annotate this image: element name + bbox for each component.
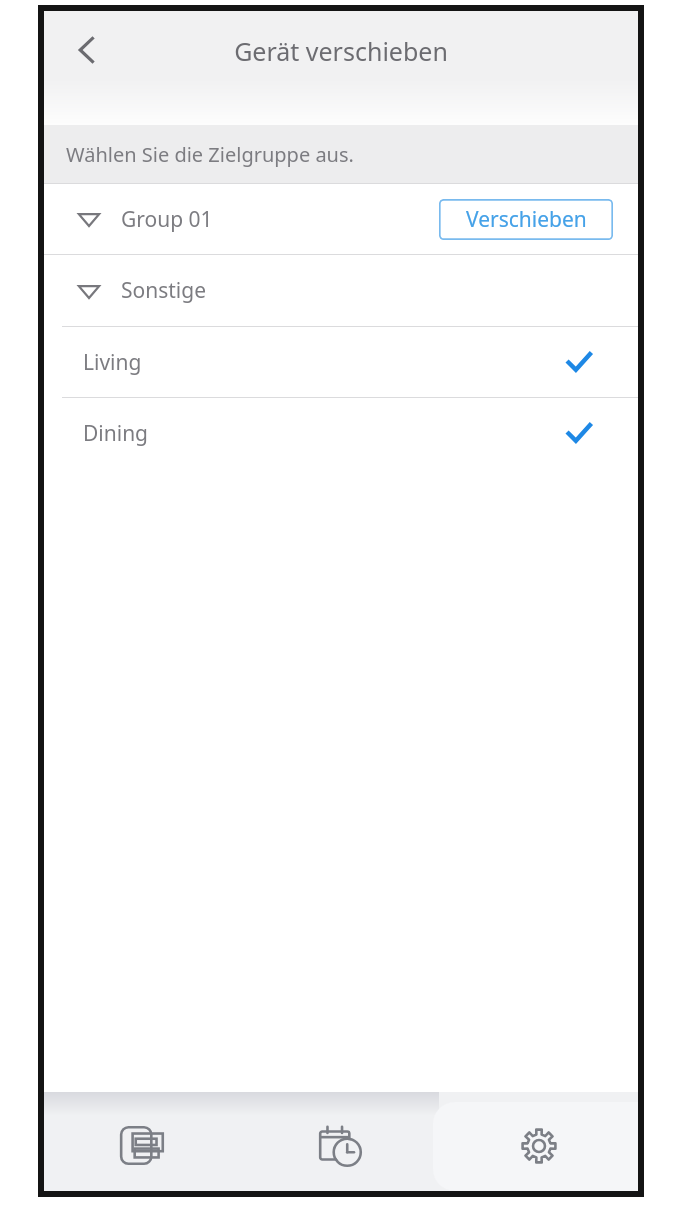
staticText: Sonstige [121,276,207,305]
staticText: Living [83,348,142,377]
staticText: Wählen Sie die Zielgruppe aus. [66,141,354,168]
button[interactable]: Verschieben [439,199,613,240]
button[interactable]: Living [44,327,638,397]
button[interactable]: Sonstige [44,255,638,326]
button[interactable]: Group 01 [44,184,638,254]
button[interactable]: Schedule [242,1092,440,1191]
staticText: Verschieben [466,205,587,234]
button[interactable]: Back [48,13,126,87]
staticText: Gerät verschieben [234,34,448,68]
button[interactable]: Settings [440,1092,638,1191]
button[interactable]: Devices [44,1092,242,1191]
button[interactable]: Dining [44,398,638,468]
staticText: Group 01 [121,205,213,234]
staticText: Dining [83,419,149,448]
